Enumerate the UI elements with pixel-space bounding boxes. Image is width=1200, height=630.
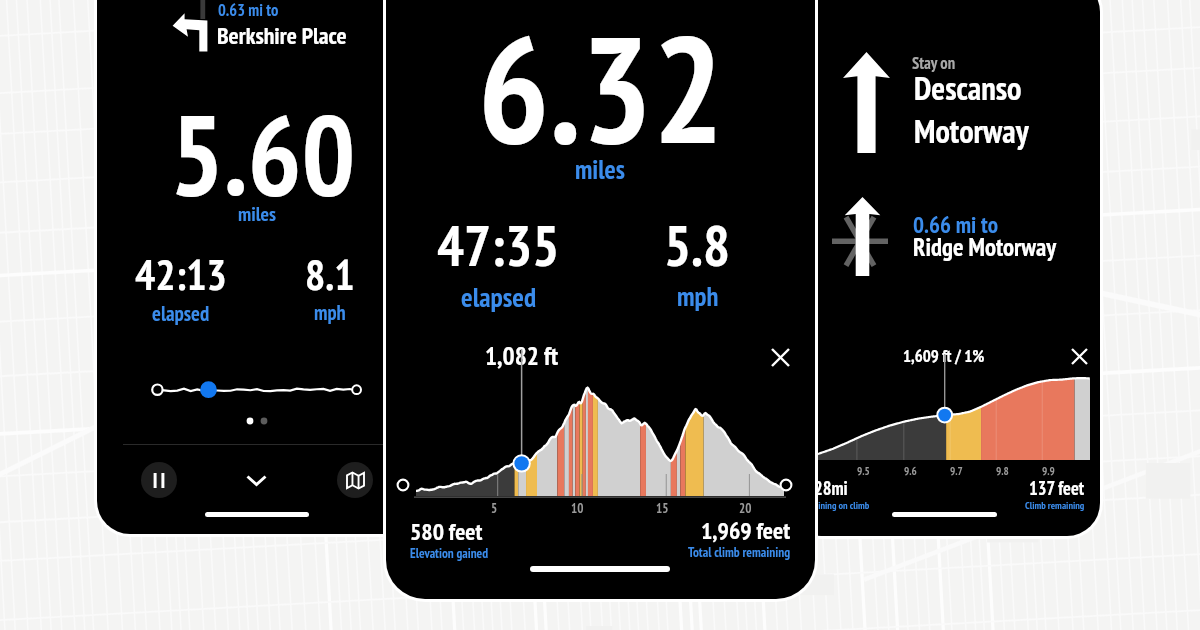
staticText: 8.1 [305,256,355,299]
staticText: Stay on [912,56,956,73]
staticText: Elevation gained [410,547,489,560]
staticText: 0.66 mi to [913,214,998,238]
staticText: elapsed [152,304,210,325]
staticText: Motorway [914,117,1029,150]
staticText: mph [677,285,719,312]
button[interactable]: Map [337,462,373,498]
button[interactable]: Close [764,341,797,374]
button[interactable]: Close [1065,342,1093,370]
staticText: 9.7 [950,466,963,477]
staticText: 20 [739,503,752,516]
staticText: 0.63 mi to [218,3,279,20]
staticText: Descanso [914,74,1022,107]
staticText: 28mi [814,480,848,499]
staticText: 4 [810,466,816,477]
staticText: aining on climb [814,501,870,511]
staticText: 9.6 [904,466,917,477]
staticText: 9.9 [1042,466,1055,477]
button[interactable]: Collapse [234,462,278,498]
staticText: miles [238,205,276,225]
staticText: miles [575,158,625,185]
staticText: Climb remaining [1025,501,1085,511]
staticText: 1,609 ft / 1% [903,349,985,366]
staticText: 10 [571,503,584,516]
staticText: 580 feet [410,521,483,545]
staticText: 1,082 ft [485,345,559,371]
staticText: 9.8 [996,466,1009,477]
staticText: elapsed [461,285,537,313]
staticText: 5.60 [170,105,356,220]
button[interactable]: Pause [141,462,177,498]
staticText: 47:35 [437,221,560,279]
staticText: Total climb remaining [688,546,791,560]
staticText: 6.32 [478,23,724,175]
staticText: 5.8 [664,221,731,279]
staticText: Berkshire Place [217,25,347,49]
staticText: 5 [491,503,498,516]
staticText: 9.5 [857,466,870,477]
staticText: 15 [656,503,669,516]
staticText: 42:13 [135,256,227,299]
staticText: 1,969 feet [701,520,791,544]
staticText: Ridge Motorway [913,236,1057,261]
staticText: 137 feet [1029,480,1085,499]
staticText: mph [314,304,346,325]
